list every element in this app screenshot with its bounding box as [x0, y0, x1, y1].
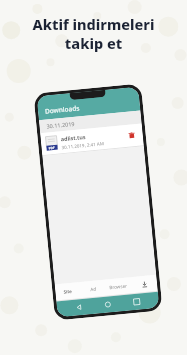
button[interactable]: Browser [104, 277, 132, 296]
staticText: Ad [90, 286, 96, 292]
button[interactable]: Recent apps [129, 294, 144, 309]
button[interactable]: Site [55, 282, 81, 300]
button[interactable]: Delete download [125, 129, 138, 142]
staticText: 30.11.2019 [46, 120, 76, 129]
staticText: PDF [48, 146, 56, 150]
staticText: Site [63, 288, 73, 295]
button[interactable]: Downloads [130, 275, 158, 293]
button[interactable]: PDF [40, 123, 144, 155]
button[interactable]: Ad [80, 280, 106, 298]
staticText: Downloads [45, 103, 80, 116]
staticText: adlist.tus [60, 133, 86, 142]
button[interactable]: Home [100, 297, 115, 312]
staticText: 30.11.2019, 2:41 AM [61, 140, 105, 150]
staticText: Browser [109, 283, 127, 290]
staticText: Aktif indirmeleri takip et [32, 14, 155, 53]
button[interactable]: Back [71, 300, 87, 315]
